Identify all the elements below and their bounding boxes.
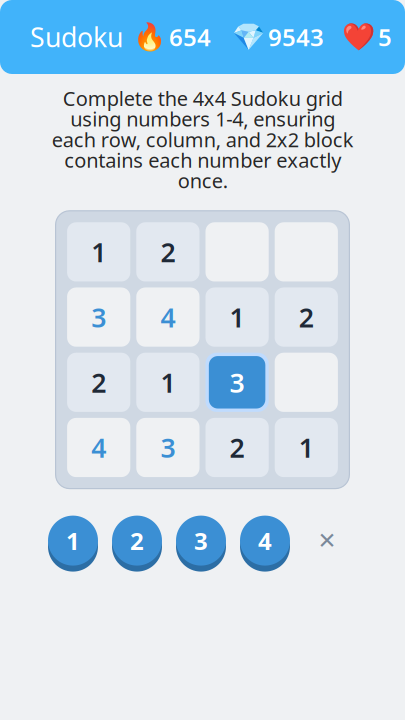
button[interactable]: Cell row 2 column 1 xyxy=(67,287,130,347)
button[interactable]: Cell row 2 column 4 xyxy=(275,287,338,347)
staticText: 4 xyxy=(258,525,272,557)
button[interactable]: Cell row 3 column 3 xyxy=(205,353,269,412)
staticText: 🔥 xyxy=(133,22,166,52)
staticText: ✕ xyxy=(317,528,336,553)
button[interactable]: Cell row 3 column 2 xyxy=(136,353,199,412)
button[interactable]: 4 xyxy=(240,512,290,570)
staticText: 5 xyxy=(378,21,392,53)
staticText: 2 xyxy=(160,234,175,270)
staticText: 3 xyxy=(91,299,106,335)
button[interactable]: Cell row 3 column 1 xyxy=(67,353,130,412)
staticText: 2 xyxy=(230,430,245,465)
button[interactable]: Cell row 1 column 3 xyxy=(205,222,269,281)
staticText: ❤️ xyxy=(342,22,375,52)
staticText: 💎 xyxy=(232,22,265,52)
staticText: 1 xyxy=(299,430,314,465)
staticText: 1 xyxy=(91,234,106,270)
staticText: 1 xyxy=(230,299,245,335)
staticText: 3 xyxy=(230,365,245,400)
staticText: 2 xyxy=(299,299,314,335)
button[interactable]: 3 xyxy=(176,512,226,570)
staticText: 654 xyxy=(169,21,211,53)
staticText: 1 xyxy=(160,365,175,400)
button[interactable]: Cell row 4 column 4 xyxy=(275,418,338,477)
staticText: 2 xyxy=(91,365,106,400)
button[interactable]: 1 xyxy=(48,512,98,570)
button[interactable]: Cell row 4 column 1 xyxy=(67,418,130,477)
staticText: Sudoku xyxy=(30,19,123,55)
button[interactable]: 2 xyxy=(112,512,162,570)
staticText: Complete the 4x4 Sudoku grid using numbe… xyxy=(51,85,353,194)
staticText: 3 xyxy=(194,525,208,557)
button[interactable]: Cell row 2 column 2 xyxy=(136,287,199,347)
staticText: 2 xyxy=(130,525,144,557)
button[interactable]: Clear cell xyxy=(308,513,346,568)
staticText: 4 xyxy=(91,430,106,465)
button[interactable]: Cell row 4 column 3 xyxy=(205,418,269,477)
button[interactable]: Cell row 4 column 2 xyxy=(136,418,199,477)
button[interactable]: Cell row 1 column 4 xyxy=(275,222,338,281)
button[interactable]: Cell row 2 column 3 xyxy=(205,287,269,347)
staticText: 3 xyxy=(160,430,175,465)
button[interactable]: Cell row 3 column 4 xyxy=(275,353,338,412)
button[interactable]: Cell row 1 column 2 xyxy=(136,222,199,281)
staticText: 4 xyxy=(160,299,175,335)
staticText: 9543 xyxy=(268,21,324,53)
button[interactable]: Cell row 1 column 1 xyxy=(67,222,130,281)
staticText: 1 xyxy=(66,525,80,557)
